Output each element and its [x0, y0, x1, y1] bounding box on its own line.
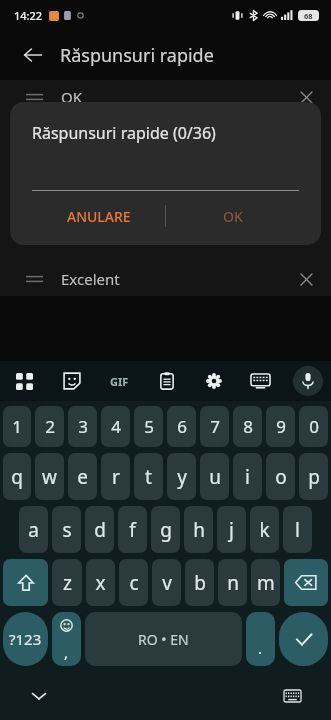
button[interactable]: Apps	[0, 361, 48, 401]
staticText: c	[129, 570, 139, 596]
staticText: x	[95, 570, 106, 596]
button[interactable]: Excelent	[0, 262, 331, 296]
staticText: l	[295, 517, 300, 543]
button[interactable]: v	[152, 559, 181, 606]
staticText: y	[177, 464, 187, 490]
button[interactable]: p	[299, 453, 328, 500]
button[interactable]: Stickers	[48, 361, 96, 401]
button[interactable]: .	[246, 612, 275, 666]
button[interactable]: Keyboard layout	[237, 361, 284, 401]
button[interactable]: ?123	[3, 612, 48, 666]
staticText: 0	[309, 415, 319, 438]
button[interactable]: h	[184, 506, 213, 553]
button[interactable]: Delete	[293, 266, 319, 292]
button[interactable]: t	[134, 453, 163, 500]
button[interactable]: k	[250, 506, 279, 553]
staticText: 8	[243, 415, 253, 438]
button[interactable]: r	[101, 453, 130, 500]
button[interactable]: OK	[0, 80, 331, 114]
staticText: RO • EN	[138, 630, 189, 649]
button[interactable]: 7	[200, 406, 229, 447]
button[interactable]: s	[52, 506, 81, 553]
staticText: ANULARE	[67, 207, 131, 226]
staticText: u	[209, 464, 221, 490]
staticText: k	[259, 517, 270, 543]
button[interactable]: a	[19, 506, 48, 553]
button[interactable]: 9	[266, 406, 295, 447]
staticText: .	[258, 638, 263, 658]
button[interactable]: f	[118, 506, 147, 553]
button[interactable]: m	[251, 559, 280, 606]
button[interactable]: Settings	[190, 361, 237, 401]
button[interactable]: GIF	[96, 361, 143, 401]
staticText: 5	[144, 415, 154, 438]
button[interactable]: o	[266, 453, 295, 500]
staticText: Răspunsuri rapide	[60, 43, 214, 68]
button[interactable]: Voice input	[284, 361, 331, 401]
button[interactable]: Backspace	[284, 559, 328, 606]
staticText: Excelent	[61, 269, 120, 289]
staticText: 6	[177, 415, 187, 438]
button[interactable]: w	[35, 453, 64, 500]
staticText: q	[11, 464, 23, 490]
staticText: o	[275, 464, 287, 490]
staticText: 7	[210, 415, 220, 438]
staticText: 14:22	[14, 8, 43, 23]
button[interactable]: b	[185, 559, 214, 606]
button[interactable]: Back	[16, 38, 50, 72]
button[interactable]: q	[3, 453, 31, 500]
button[interactable]: Clipboard	[143, 361, 190, 401]
staticText: ,	[64, 642, 69, 662]
button[interactable]: OK	[166, 191, 299, 241]
button[interactable]: n	[218, 559, 247, 606]
staticText: m	[257, 570, 275, 596]
button[interactable]: u	[200, 453, 229, 500]
button[interactable]: 8	[233, 406, 262, 447]
staticText: r	[112, 464, 120, 490]
button[interactable]: 0	[299, 406, 328, 447]
button[interactable]: z	[52, 559, 82, 606]
staticText: v	[162, 570, 172, 596]
button[interactable]: Emoji and comma	[52, 612, 81, 666]
staticText: 68	[304, 11, 313, 21]
staticText: z	[63, 570, 72, 596]
staticText: s	[62, 517, 72, 543]
button[interactable]: e	[68, 453, 97, 500]
staticText: j	[229, 517, 234, 543]
button[interactable]: 3	[68, 406, 97, 447]
button[interactable]: ANULARE	[32, 191, 165, 241]
staticText: n	[227, 570, 239, 596]
staticText: p	[308, 464, 320, 490]
button[interactable]: Enter	[279, 612, 328, 666]
button[interactable]: RO • EN	[85, 612, 242, 666]
staticText: 1	[12, 415, 22, 438]
button[interactable]: Hide keyboard	[24, 681, 54, 711]
button[interactable]: 1	[3, 406, 31, 447]
button[interactable]: 6	[167, 406, 196, 447]
button[interactable]: Delete	[293, 84, 319, 110]
button[interactable]: x	[86, 559, 115, 606]
staticText: 4	[111, 415, 121, 438]
button[interactable]: Switch keyboard	[277, 681, 307, 711]
button[interactable]: g	[151, 506, 180, 553]
staticText: h	[193, 517, 205, 543]
button[interactable]: i	[233, 453, 262, 500]
button[interactable]: 2	[35, 406, 64, 447]
button[interactable]: l	[283, 506, 312, 553]
staticText: OK	[61, 87, 83, 107]
staticText: t	[145, 464, 152, 490]
button[interactable]: d	[85, 506, 114, 553]
staticText: 9	[276, 415, 286, 438]
button[interactable]: j	[217, 506, 246, 553]
button[interactable]: 4	[101, 406, 130, 447]
staticText: 3	[78, 415, 88, 438]
button[interactable]: 5	[134, 406, 163, 447]
staticText: a	[28, 517, 39, 543]
staticText: f	[129, 517, 136, 543]
staticText: g	[160, 517, 172, 543]
button[interactable]: Shift	[3, 559, 48, 606]
button[interactable]: c	[119, 559, 148, 606]
staticText: e	[77, 464, 88, 490]
staticText: d	[94, 517, 106, 543]
button[interactable]: y	[167, 453, 196, 500]
